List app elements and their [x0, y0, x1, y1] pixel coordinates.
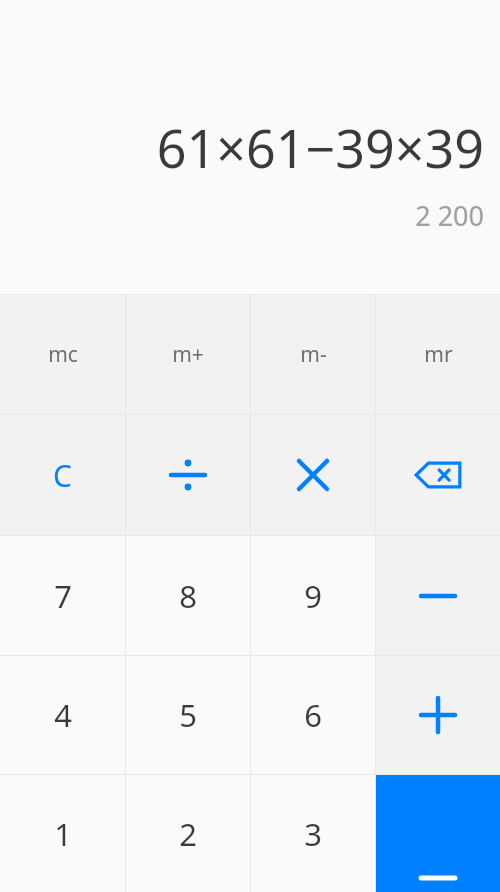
button[interactable]: Minus: [376, 536, 500, 655]
button[interactable]: 8: [126, 536, 250, 655]
button[interactable]: mc: [0, 295, 125, 414]
button[interactable]: 9: [251, 536, 375, 655]
button[interactable]: C: [0, 415, 125, 535]
button[interactable]: mr: [376, 295, 500, 414]
staticText: C: [53, 455, 72, 496]
button[interactable]: 3: [251, 775, 375, 892]
staticText: 3: [304, 813, 322, 855]
button[interactable]: Plus: [376, 656, 500, 774]
staticText: mc: [48, 340, 78, 369]
staticText: 61×61−39×39: [156, 112, 484, 183]
button[interactable]: 4: [0, 656, 125, 774]
staticText: 9: [304, 575, 322, 617]
button[interactable]: 5: [126, 656, 250, 774]
staticText: 4: [54, 694, 72, 736]
staticText: 5: [179, 694, 197, 736]
staticText: 7: [54, 575, 72, 617]
staticText: m+: [172, 340, 204, 369]
button[interactable]: m-: [251, 295, 375, 414]
staticText: mr: [424, 340, 453, 369]
button[interactable]: 6: [251, 656, 375, 774]
staticText: m-: [300, 340, 327, 369]
staticText: 1: [54, 813, 72, 855]
button[interactable]: 1: [0, 775, 125, 892]
button[interactable]: 2: [126, 775, 250, 892]
staticText: 8: [179, 575, 197, 617]
staticText: 2 200: [415, 197, 484, 234]
button[interactable]: m+: [126, 295, 250, 414]
button[interactable]: Divide: [126, 415, 250, 535]
button[interactable]: Equals: [376, 775, 500, 892]
staticText: 6: [304, 694, 322, 736]
staticText: 2: [179, 813, 197, 855]
button[interactable]: Backspace: [376, 415, 500, 535]
button[interactable]: Multiply: [251, 415, 375, 535]
button[interactable]: 7: [0, 536, 125, 655]
